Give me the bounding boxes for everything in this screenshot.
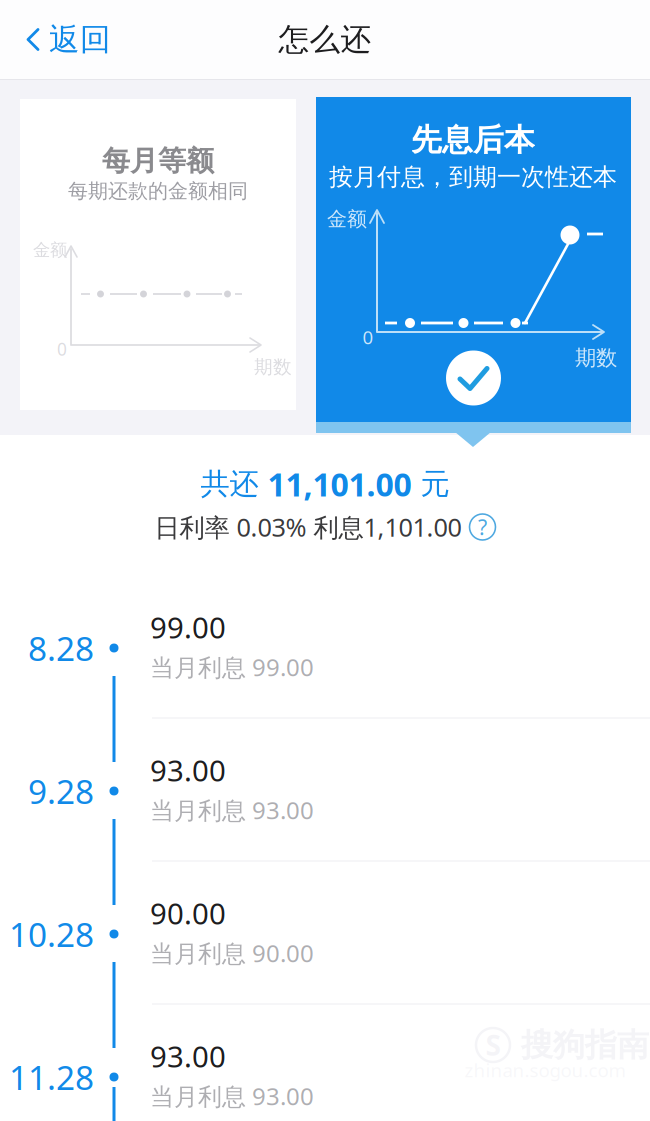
staticText: 当月利息 99.00: [150, 651, 314, 683]
button[interactable]: 8.28: [0, 575, 650, 718]
button[interactable]: 每月等额: [20, 99, 296, 410]
staticText: 共还: [200, 466, 267, 502]
staticText: 金额: [327, 207, 367, 231]
staticText: 怎么还: [278, 21, 371, 58]
staticText: 每月等额: [102, 144, 214, 178]
staticText: 93.00: [150, 750, 226, 789]
staticText: 0: [362, 325, 373, 349]
staticText: 返回: [49, 21, 111, 58]
staticText: 8.28: [28, 626, 94, 670]
button[interactable]: 9.28: [0, 718, 650, 861]
staticText: 元: [411, 466, 449, 502]
staticText: 0: [57, 337, 67, 360]
staticText: 90.00: [150, 893, 226, 932]
staticText: 当月利息 90.00: [150, 937, 314, 969]
staticText: 期数: [254, 355, 292, 378]
staticText: 期数: [575, 345, 617, 371]
staticText: 按月付息，到期一次性还本: [329, 162, 617, 192]
button[interactable]: 先息后本: [316, 97, 631, 422]
staticText: 先息后本: [411, 121, 535, 159]
staticText: ?: [478, 513, 487, 541]
staticText: S: [485, 1026, 500, 1064]
button[interactable]: 返回: [0, 0, 137, 78]
staticText: 9.28: [28, 769, 94, 813]
staticText: 金额: [33, 239, 67, 261]
button[interactable]: 10.28: [0, 861, 650, 1004]
staticText: 每期还款的金额相同: [68, 179, 248, 203]
staticText: 当月利息 93.00: [150, 794, 314, 826]
staticText: 99.00: [150, 607, 226, 646]
button[interactable]: 11.28: [0, 1004, 650, 1121]
staticText: 当月利息 93.00: [150, 1080, 314, 1112]
staticText: 日利率 0.03% 利息1,101.00: [154, 510, 461, 544]
staticText: 11.28: [9, 1055, 94, 1099]
staticText: 11,101.00: [267, 463, 411, 505]
staticText: 搜狗指南: [521, 1025, 649, 1065]
staticText: 93.00: [150, 1036, 226, 1075]
staticText: 10.28: [9, 912, 94, 956]
